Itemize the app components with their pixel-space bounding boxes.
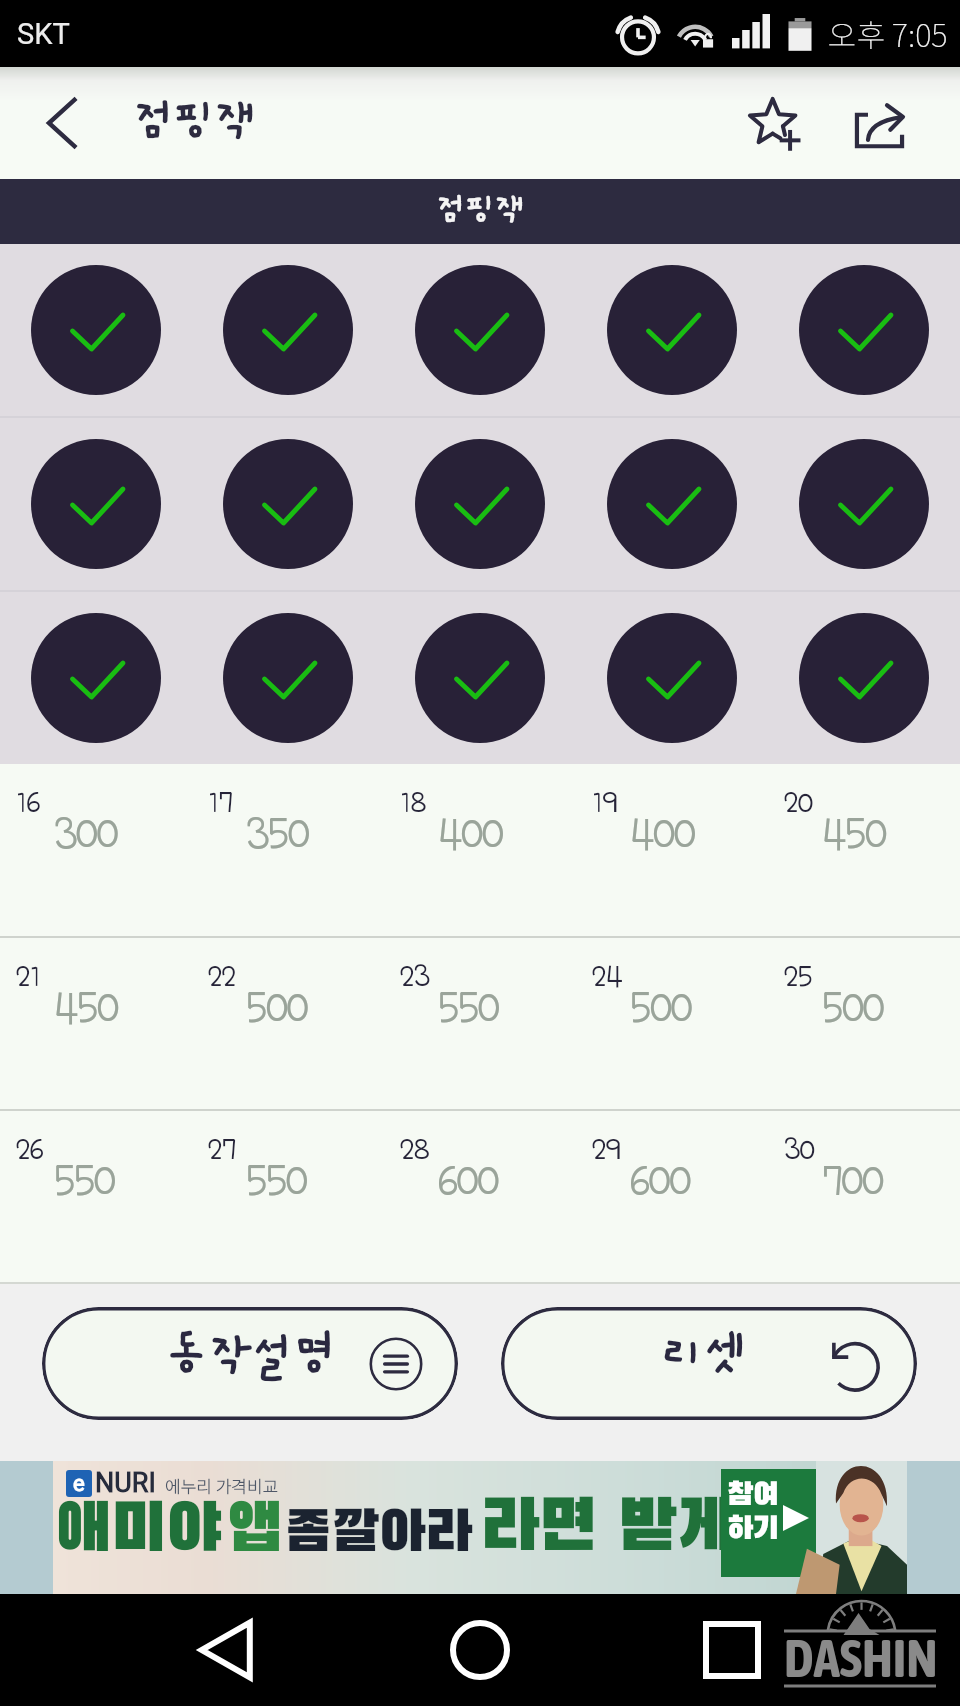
staticText: 앱 bbox=[226, 1499, 283, 1565]
button[interactable]: 16 bbox=[0, 764, 192, 936]
staticText: 350 bbox=[246, 811, 309, 857]
button[interactable]: Back bbox=[177, 1594, 277, 1706]
staticText: 19 bbox=[592, 786, 617, 818]
button[interactable]: 25 bbox=[768, 938, 960, 1109]
staticText: DASHIN bbox=[784, 1627, 936, 1688]
staticText: 오후 7:05 bbox=[828, 11, 948, 56]
button[interactable]: 24 bbox=[576, 938, 768, 1109]
staticText: 리셋 bbox=[661, 1329, 747, 1381]
button[interactable] bbox=[192, 244, 384, 416]
button[interactable]: 동작설명 bbox=[42, 1307, 458, 1420]
button[interactable]: 19 bbox=[576, 764, 768, 936]
button[interactable] bbox=[576, 418, 768, 590]
staticText: 18 bbox=[400, 786, 426, 818]
button[interactable]: Back bbox=[18, 77, 110, 169]
button[interactable]: Add to favorites bbox=[729, 67, 821, 179]
staticText: 450 bbox=[54, 985, 118, 1031]
button[interactable] bbox=[192, 418, 384, 590]
staticText: NURI bbox=[95, 1467, 156, 1499]
staticText: 26 bbox=[16, 1133, 43, 1165]
staticText: 450 bbox=[822, 811, 886, 857]
staticText: 550 bbox=[246, 1158, 307, 1204]
button[interactable] bbox=[384, 418, 576, 590]
button[interactable]: Home bbox=[430, 1594, 530, 1706]
staticText: 라면 받게 bbox=[481, 1495, 737, 1565]
button[interactable]: 28 bbox=[384, 1111, 576, 1282]
staticText: 애미야 bbox=[55, 1499, 222, 1565]
button[interactable] bbox=[768, 244, 960, 416]
staticText: 600 bbox=[630, 1158, 690, 1204]
button[interactable]: 26 bbox=[0, 1111, 192, 1282]
button[interactable]: e bbox=[0, 1461, 960, 1594]
button[interactable]: 21 bbox=[0, 938, 192, 1109]
staticText: 400 bbox=[630, 811, 695, 857]
button[interactable] bbox=[768, 418, 960, 590]
button[interactable]: 27 bbox=[192, 1111, 384, 1282]
staticText: 16 bbox=[16, 786, 40, 818]
button[interactable]: 17 bbox=[192, 764, 384, 936]
button[interactable] bbox=[576, 592, 768, 764]
staticText: 20 bbox=[784, 786, 813, 818]
button[interactable]: 30 bbox=[768, 1111, 960, 1282]
staticText: 500 bbox=[822, 985, 884, 1031]
button[interactable] bbox=[768, 592, 960, 764]
staticText: 22 bbox=[208, 960, 236, 992]
button[interactable] bbox=[192, 592, 384, 764]
staticText: SKT bbox=[17, 17, 70, 51]
staticText: 21 bbox=[16, 960, 41, 992]
staticText: 점핑잭 bbox=[133, 96, 256, 146]
staticText: 300 bbox=[54, 811, 118, 857]
staticText: e bbox=[73, 1471, 85, 1497]
staticText: 550 bbox=[438, 985, 499, 1031]
button[interactable] bbox=[576, 244, 768, 416]
button[interactable] bbox=[0, 244, 192, 416]
button[interactable] bbox=[0, 418, 192, 590]
staticText: 400 bbox=[438, 811, 503, 857]
staticText: 에누리 가격비교 bbox=[165, 1473, 279, 1498]
button[interactable] bbox=[384, 244, 576, 416]
button[interactable]: Share bbox=[836, 67, 928, 179]
staticText: 17 bbox=[208, 786, 233, 818]
staticText: 동작설명 bbox=[165, 1329, 336, 1381]
button[interactable] bbox=[384, 592, 576, 764]
staticText: 24 bbox=[592, 960, 622, 992]
staticText: 23 bbox=[400, 960, 430, 992]
staticText: 28 bbox=[400, 1133, 429, 1165]
button[interactable]: 18 bbox=[384, 764, 576, 936]
button[interactable]: 리셋 bbox=[501, 1307, 917, 1420]
button[interactable]: 22 bbox=[192, 938, 384, 1109]
staticText: 29 bbox=[592, 1133, 620, 1165]
button[interactable]: Recent apps bbox=[682, 1594, 782, 1706]
button[interactable] bbox=[0, 592, 192, 764]
staticText: 27 bbox=[208, 1133, 236, 1165]
staticText: 점핑잭 bbox=[436, 192, 525, 228]
button[interactable]: 20 bbox=[768, 764, 960, 936]
staticText: 500 bbox=[246, 985, 308, 1031]
staticText: 500 bbox=[630, 985, 692, 1031]
staticText: 550 bbox=[54, 1158, 115, 1204]
staticText: 30 bbox=[784, 1133, 814, 1165]
button[interactable]: 23 bbox=[384, 938, 576, 1109]
staticText: 600 bbox=[438, 1158, 498, 1204]
staticText: 하기 bbox=[727, 1515, 779, 1546]
staticText: 좀깔아라 bbox=[285, 1507, 473, 1563]
staticText: 700 bbox=[822, 1158, 883, 1204]
staticText: 25 bbox=[784, 960, 812, 992]
staticText: 참여 bbox=[727, 1481, 779, 1512]
button[interactable]: 29 bbox=[576, 1111, 768, 1282]
